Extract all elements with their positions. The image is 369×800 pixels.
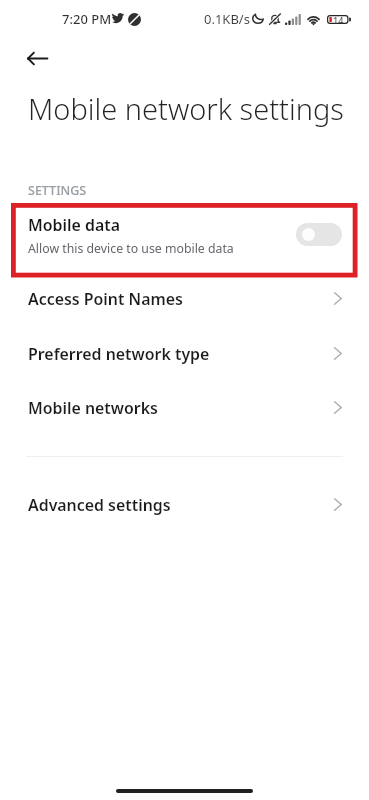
staticText: 0.1KB/s <box>204 10 250 28</box>
staticText: 14 <box>333 14 344 26</box>
staticText: Allow this device to use mobile data <box>28 240 234 257</box>
button[interactable]: Back <box>16 37 58 79</box>
staticText: SETTINGS <box>28 182 87 199</box>
button[interactable]: Preferred network type <box>0 326 369 381</box>
staticText: Access Point Names <box>28 288 334 310</box>
staticText: Mobile network settings <box>28 89 344 128</box>
button[interactable]: Mobile data switch, off <box>296 223 342 246</box>
staticText: Preferred network type <box>28 343 334 365</box>
staticText: Mobile data <box>28 214 120 236</box>
staticText: Advanced settings <box>28 494 334 516</box>
button[interactable]: Access Point Names <box>0 271 369 326</box>
button[interactable]: Advanced settings <box>0 477 369 532</box>
button[interactable]: Mobile data <box>0 199 369 272</box>
button[interactable]: Mobile networks <box>0 380 369 435</box>
staticText: 7:20 PM <box>62 10 112 28</box>
staticText: Mobile networks <box>28 397 334 419</box>
